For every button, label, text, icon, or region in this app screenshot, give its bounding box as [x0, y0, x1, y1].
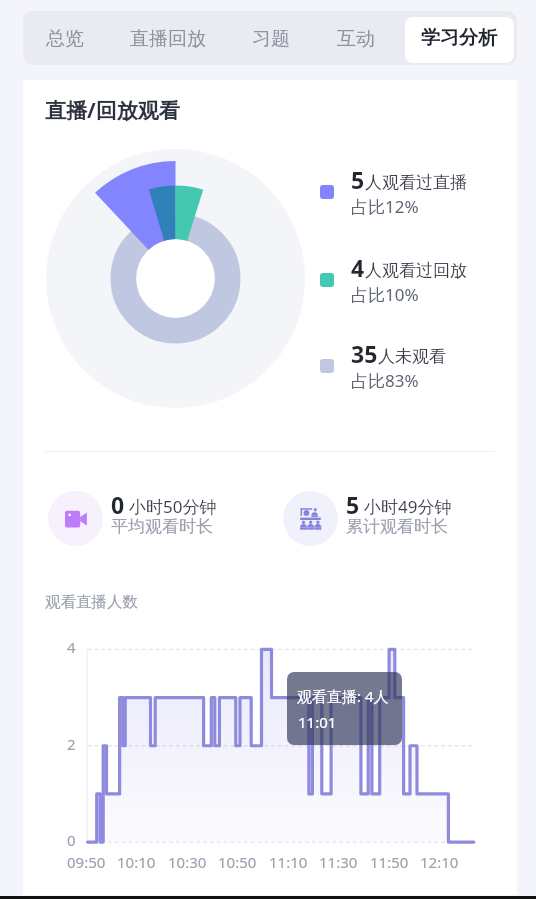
button[interactable]: Average watch time	[48, 491, 221, 546]
staticText: 35	[351, 338, 378, 369]
other: Average watch time	[65, 508, 87, 530]
staticText: 4	[351, 252, 365, 283]
staticText: 5	[351, 164, 365, 195]
staticText: 10:30	[168, 852, 207, 872]
staticText: 0	[111, 489, 125, 520]
staticText: 11:30	[319, 852, 358, 872]
other: Total watch time	[300, 508, 322, 530]
button[interactable]: 4	[318, 254, 503, 306]
staticText: 平均观看时长	[111, 516, 213, 537]
button[interactable]: 35	[318, 340, 503, 392]
staticText: 习题	[252, 27, 290, 51]
staticText: 11:50	[370, 852, 409, 872]
staticText: 直播/回放观看	[45, 96, 180, 125]
staticText: 累计观看时长	[346, 516, 448, 537]
staticText: 观看直播: 4人	[297, 686, 389, 706]
button[interactable]: Total watch time	[283, 491, 456, 546]
button[interactable]: 总览	[33, 11, 97, 65]
staticText: 人未观看	[378, 346, 446, 367]
staticText: 11:10	[269, 852, 308, 872]
staticText: 10:10	[117, 852, 156, 872]
staticText: 占比12%	[351, 195, 419, 218]
staticText: 人观看过回放	[365, 260, 467, 281]
staticText: 直播回放	[130, 27, 206, 51]
button[interactable]: 学习分析	[405, 17, 514, 63]
button[interactable]: 直播回放	[117, 11, 219, 65]
staticText: 11:01	[298, 712, 337, 732]
staticText: 占比10%	[351, 283, 419, 306]
staticText: 12:10	[420, 852, 459, 872]
staticText: 2	[67, 734, 76, 754]
staticText: 人观看过直播	[365, 172, 467, 193]
staticText: 09:50	[67, 852, 106, 872]
staticText: 0	[67, 830, 76, 850]
staticText: 10:50	[218, 852, 257, 872]
staticText: 5	[346, 489, 360, 520]
button[interactable]: 互动	[324, 11, 388, 65]
staticText: 总览	[46, 27, 84, 51]
staticText: 小时49分钟	[364, 495, 452, 518]
staticText: 占比83%	[351, 369, 419, 392]
staticText: 观看直播人数	[45, 592, 138, 612]
button[interactable]: 习题	[239, 11, 303, 65]
button[interactable]: 5	[318, 166, 503, 218]
staticText: 4	[67, 637, 76, 657]
staticText: 互动	[337, 27, 375, 51]
staticText: 小时50分钟	[129, 495, 217, 518]
staticText: 学习分析	[421, 26, 497, 50]
